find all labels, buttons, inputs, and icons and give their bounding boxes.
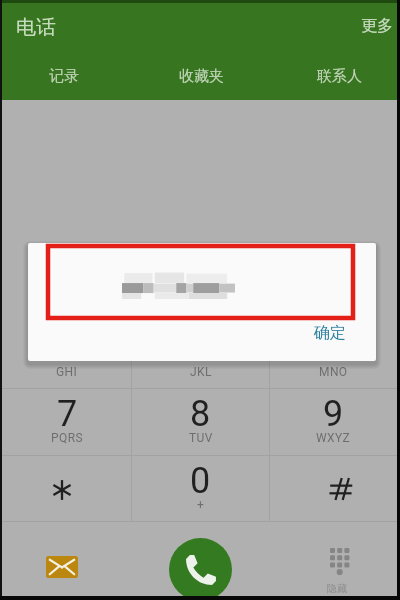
button[interactable]: Messages <box>40 550 84 584</box>
staticText: 0 <box>190 460 211 502</box>
button[interactable]: 收藏夹 <box>128 53 274 100</box>
staticText: PQRS <box>51 431 83 445</box>
button[interactable]: 记录 <box>0 53 128 100</box>
button[interactable]: 联系人 <box>278 53 400 100</box>
staticText: GHI <box>56 365 78 379</box>
button[interactable]: 8 <box>134 388 267 454</box>
staticText: 记录 <box>49 67 79 86</box>
button[interactable]: 7 <box>0 388 134 454</box>
button[interactable]: Hide keypad <box>310 538 372 600</box>
button[interactable]: Call <box>169 538 232 600</box>
button[interactable]: 更多 <box>359 14 395 38</box>
staticText: 8 <box>190 393 211 435</box>
staticText: 5 <box>190 327 211 369</box>
staticText: 联系人 <box>317 67 362 86</box>
staticText: JKL <box>190 365 212 379</box>
staticText: 更多 <box>361 16 393 36</box>
staticText: 隐藏 <box>327 582 347 595</box>
staticText: 确定 <box>314 323 346 343</box>
button[interactable]: 6 <box>267 322 400 388</box>
staticText: MNO <box>319 365 348 379</box>
button[interactable] <box>267 455 400 521</box>
button[interactable]: 0 <box>134 455 267 521</box>
button[interactable]: 9 <box>267 388 400 454</box>
staticText: 7 <box>57 393 78 435</box>
staticText: 电话 <box>16 15 56 40</box>
staticText: WXYZ <box>316 431 351 445</box>
button[interactable]: 5 <box>134 322 267 388</box>
staticText: 9 <box>323 393 344 435</box>
button[interactable] <box>0 455 134 521</box>
staticText: 收藏夹 <box>179 67 224 86</box>
button[interactable]: 4 <box>0 322 134 388</box>
staticText: 4 <box>57 327 78 369</box>
staticText: TUV <box>189 431 213 445</box>
button[interactable]: 电话 <box>14 13 58 42</box>
button[interactable]: 确定 <box>306 315 354 351</box>
staticText: + <box>197 498 205 512</box>
staticText: 6 <box>323 327 344 369</box>
